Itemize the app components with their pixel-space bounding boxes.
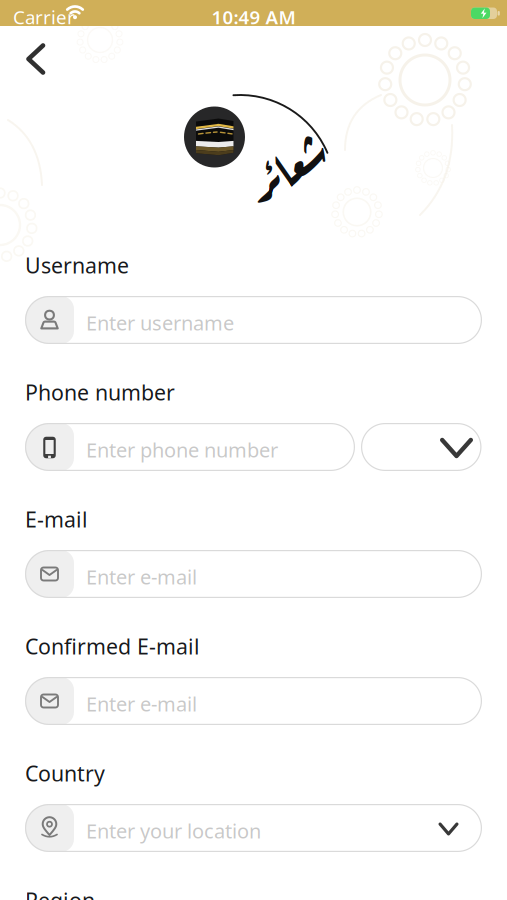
button[interactable] <box>361 423 481 471</box>
staticText: Region <box>25 886 95 900</box>
staticText: Enter phone number <box>86 436 278 463</box>
staticText: Carrier <box>13 4 75 29</box>
staticText: Enter username <box>86 309 234 336</box>
staticText: 10:49 AM <box>211 4 295 29</box>
staticText: Phone number <box>25 378 175 406</box>
staticText: Username <box>25 251 129 279</box>
staticText: Enter e-mail <box>86 563 197 590</box>
button[interactable]: Enter e-mail <box>25 550 482 598</box>
button[interactable] <box>0 0 64 92</box>
staticText: Enter your location <box>86 817 261 844</box>
staticText: Country <box>25 759 105 787</box>
staticText: شعائر <box>241 127 327 199</box>
staticText: Confirmed E-mail <box>25 632 200 660</box>
staticText: Enter e-mail <box>86 690 197 717</box>
button[interactable]: Enter your location <box>25 804 482 852</box>
button[interactable]: Enter e-mail <box>25 677 482 725</box>
button[interactable]: Enter phone number <box>25 423 355 471</box>
staticText: E-mail <box>25 505 88 533</box>
button[interactable]: Enter username <box>25 296 482 344</box>
